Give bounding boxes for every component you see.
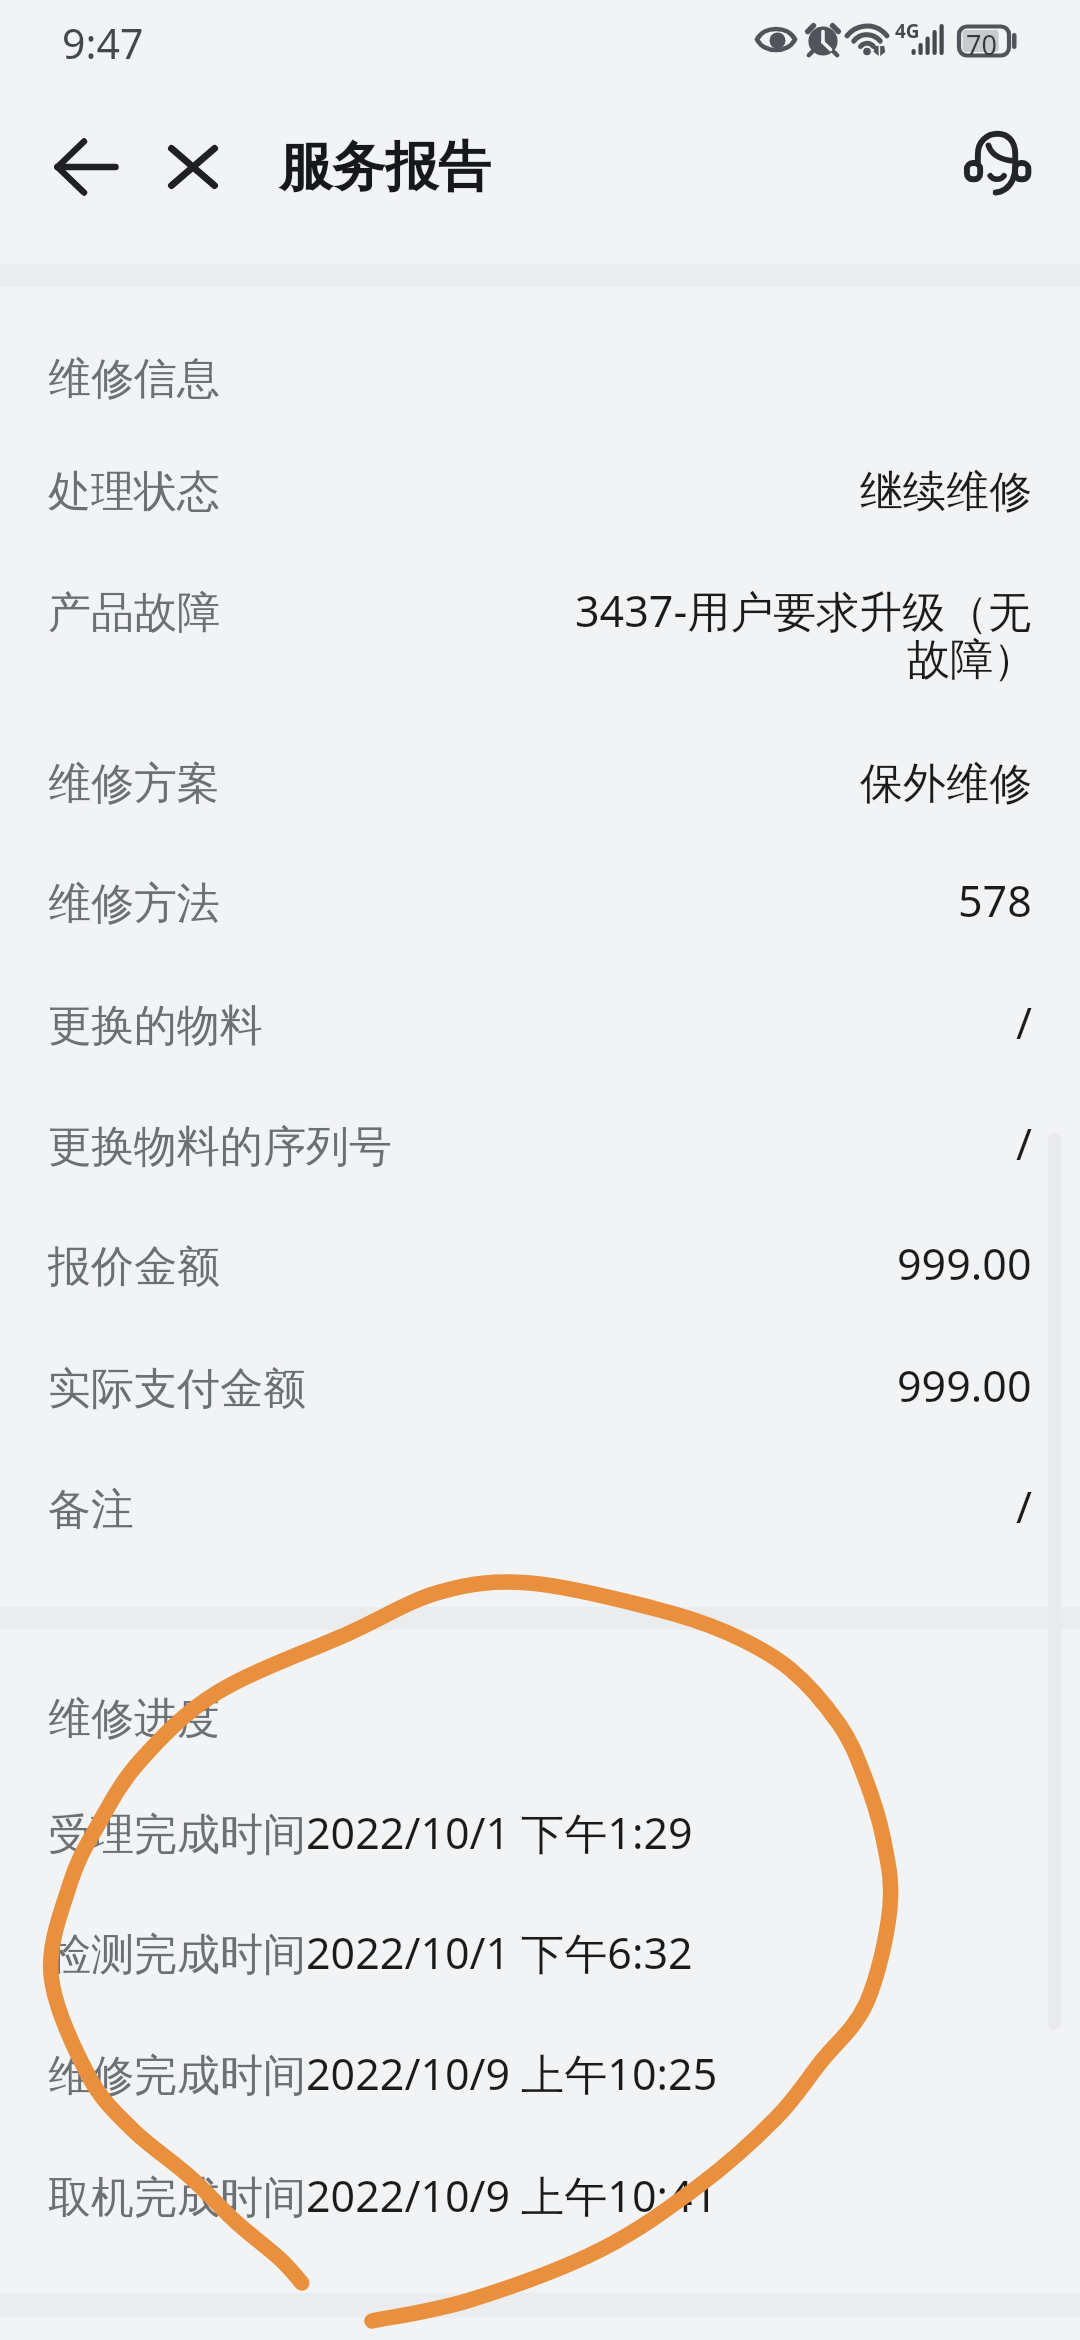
staticText: 报价金额 xyxy=(48,1240,220,1294)
staticText: 更换的物料 xyxy=(48,999,263,1053)
button[interactable]: 更换物料的序列号 xyxy=(0,1079,1080,1200)
staticText: 受理完成时间2022/10/1 下午1:29 xyxy=(48,1803,693,1862)
staticText: 处理状态 xyxy=(48,465,220,519)
staticText: 维修进度 xyxy=(48,1692,220,1746)
staticText: / xyxy=(1016,1114,1032,1173)
staticText: 维修完成时间2022/10/9 上午10:25 xyxy=(48,2044,718,2103)
button[interactable]: 维修方法 xyxy=(0,836,1080,957)
staticText: 维修信息 xyxy=(48,352,220,406)
staticText: 实际支付金额 xyxy=(48,1362,306,1416)
staticText: 备注 xyxy=(48,1483,134,1537)
staticText: 服务报告 xyxy=(279,134,491,201)
button[interactable]: 更换的物料 xyxy=(0,958,1080,1079)
staticText: 578 xyxy=(958,871,1032,930)
button[interactable]: 维修方案 xyxy=(0,716,1080,837)
button[interactable]: Back xyxy=(38,119,134,215)
staticText: 保外维修 xyxy=(860,757,1032,811)
staticText: 999.00 xyxy=(897,1356,1032,1415)
staticText: 继续维修 xyxy=(860,465,1032,519)
staticText: 3437-用户要求升级（无 xyxy=(575,581,1032,640)
staticText: 产品故障 xyxy=(48,586,220,640)
staticText: 故障） xyxy=(907,633,1036,687)
staticText: / xyxy=(1016,1477,1032,1536)
button[interactable]: 处理状态 xyxy=(0,424,1080,545)
button[interactable]: Close xyxy=(145,119,241,215)
staticText: 检测完成时间2022/10/1 下午6:32 xyxy=(48,1923,693,1982)
staticText: / xyxy=(1016,993,1032,1052)
staticText: 取机完成时间2022/10/9 上午10:41 xyxy=(48,2166,718,2225)
staticText: 维修方案 xyxy=(48,757,220,811)
staticText: 更换物料的序列号 xyxy=(48,1120,392,1174)
staticText: 维修方法 xyxy=(48,877,220,931)
button[interactable]: 产品故障 xyxy=(0,545,1080,716)
button[interactable]: 报价金额 xyxy=(0,1199,1080,1320)
button[interactable]: 实际支付金额 xyxy=(0,1321,1080,1442)
staticText: 70 xyxy=(966,26,997,63)
staticText: 9:47 xyxy=(62,15,144,71)
staticText: 999.00 xyxy=(897,1234,1032,1293)
staticText: 4G xyxy=(895,18,920,44)
button[interactable]: 备注 xyxy=(0,1442,1080,1563)
button[interactable]: Customer service xyxy=(959,128,1035,204)
